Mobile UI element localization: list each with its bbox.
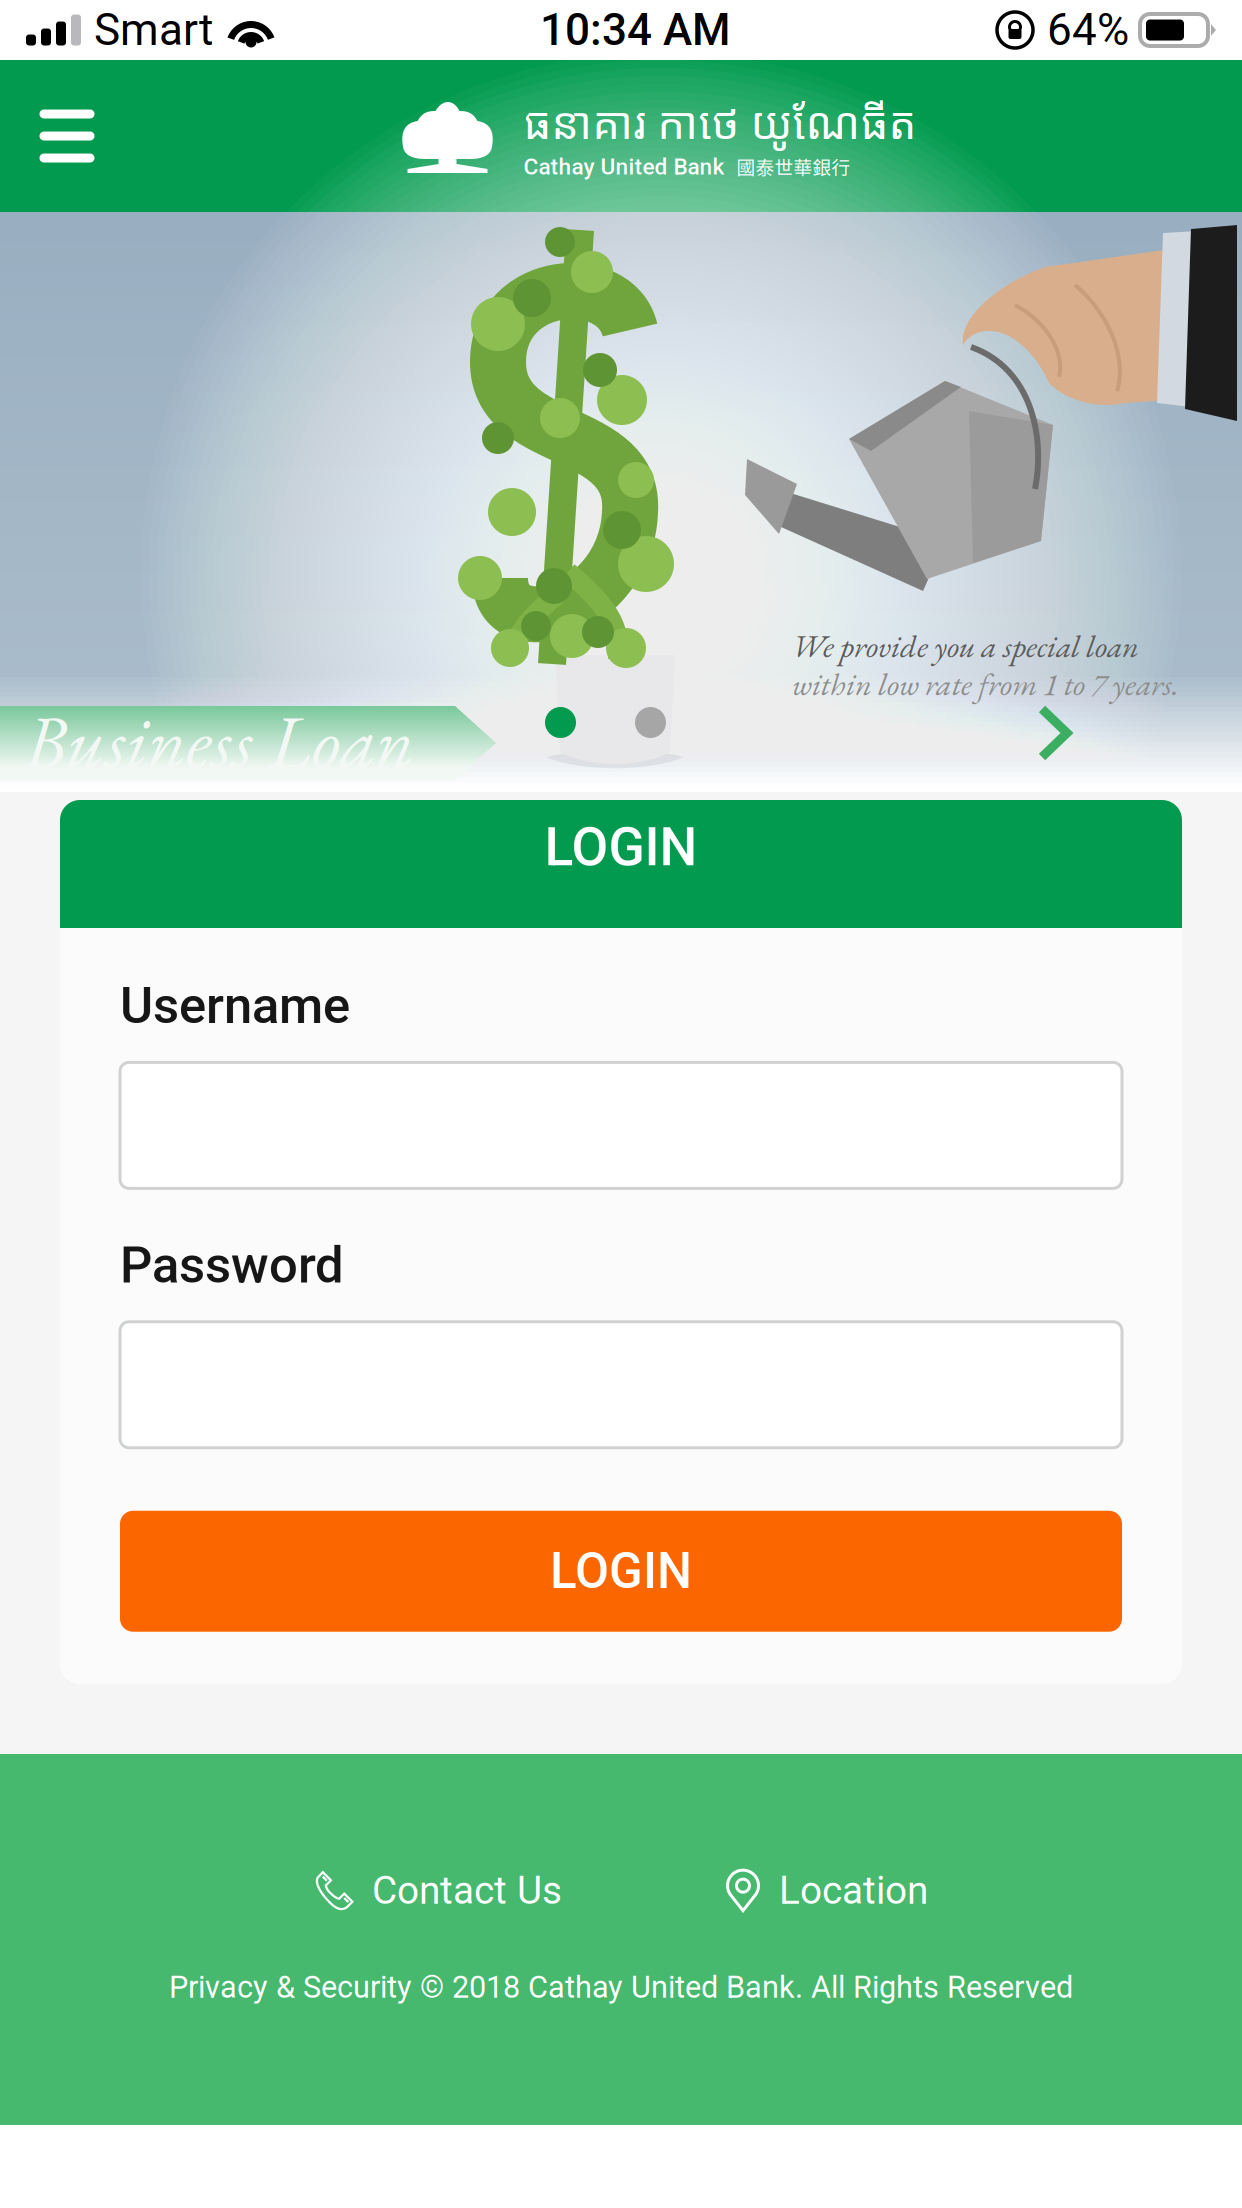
button[interactable]: LOGIN [120,1511,1122,1632]
button[interactable]: Menu [0,60,134,212]
staticText: Username [120,976,350,1035]
staticText: Smart [94,4,213,56]
button[interactable]: Slide 1 [545,707,576,738]
button[interactable]: Contact Us [314,1868,562,1913]
staticText: 國泰世華銀行 [736,153,850,180]
staticText: within low rate from 1 to 7 years. [792,663,1179,705]
staticText: Location [779,1868,928,1913]
staticText: ធនាគារ កាថេ យូណែធីត [523,92,916,152]
staticText: Contact Us [372,1868,562,1913]
button[interactable]: Slide 2 [635,707,666,738]
staticText: Cathay United Bank [523,153,724,180]
staticText: Privacy & Security © 2018 Cathay United … [169,1969,1073,2005]
staticText: Business Loan [24,692,414,790]
staticText: 10:34 AM [540,4,730,56]
staticText: We provide you a special loan [792,625,1139,667]
button[interactable]: Location [726,1868,928,1913]
staticText: Password [120,1235,344,1295]
button[interactable]: Next slide [1020,687,1090,779]
staticText: 64% [1047,4,1129,56]
staticText: LOGIN [544,816,697,878]
staticText: LOGIN [550,1542,692,1600]
